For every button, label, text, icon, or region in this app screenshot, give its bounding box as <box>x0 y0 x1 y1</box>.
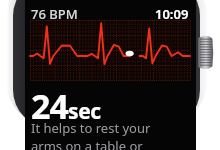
staticText: 24 <box>31 83 68 129</box>
staticText: arms on a table or <box>31 137 143 150</box>
staticText: sec <box>68 97 101 126</box>
button[interactable] <box>30 20 190 80</box>
button[interactable]: Digital Crown <box>198 34 214 71</box>
staticText: 76 BPM <box>31 5 78 23</box>
staticText: 10:09 <box>155 5 189 23</box>
staticText: It helps to rest your <box>31 119 151 137</box>
